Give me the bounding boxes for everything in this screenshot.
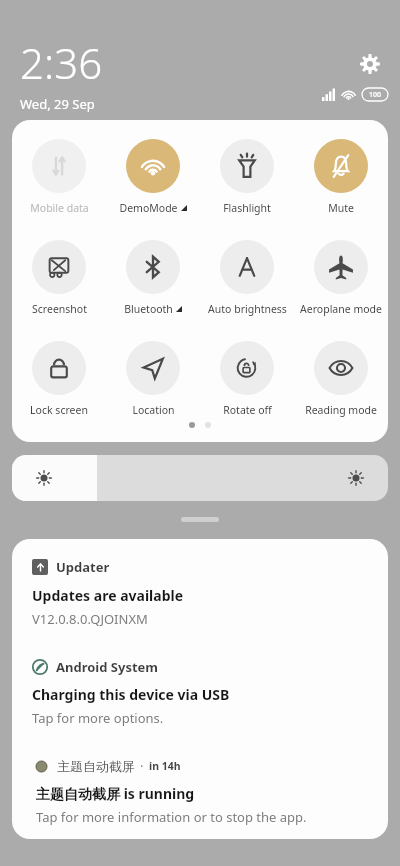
staticText: Rotate off [223,403,272,417]
staticText: Mobile data [30,201,89,215]
button[interactable]: Flashlight [200,137,294,217]
button[interactable]: Rotate off [200,339,294,419]
button[interactable]: Android System [12,658,388,735]
staticText: 100 [369,90,382,100]
staticText: Aeroplane mode [300,302,382,316]
button[interactable]: 主题自动截屏 [12,757,388,836]
button[interactable]: Mute [294,137,388,217]
button[interactable]: Brightness [12,455,388,501]
button[interactable]: Updater [12,539,388,636]
staticText: 主题自动截屏 [57,758,135,774]
staticText: Mute [328,201,354,215]
button[interactable]: Bluetooth [106,238,200,318]
staticText: 主题自动截屏 is running [36,784,195,803]
staticText: Auto brightness [208,302,287,316]
staticText: Lock screen [30,403,88,417]
button[interactable]: Lock screen [12,339,106,419]
staticText: · [140,757,144,775]
staticText: Screenshot [32,302,87,316]
button[interactable]: Location [106,339,200,419]
button[interactable]: Reading mode [294,339,388,419]
staticText: Wed, 29 Sep [20,95,95,113]
staticText: Tap for more information or to stop the … [36,808,307,826]
staticText: in 14h [149,759,181,773]
staticText: DemoMode [119,201,178,215]
button[interactable]: Aeroplane mode [294,238,388,318]
staticText: Flashlight [223,201,271,215]
staticText: Reading mode [305,403,377,417]
button[interactable]: Mobile data [12,137,106,217]
staticText: Charging this device via USB [32,685,230,704]
staticText: Android System [56,658,159,676]
button[interactable]: Settings [354,48,386,80]
staticText: Bluetooth [124,302,173,316]
staticText: V12.0.8.0.QJOINXM [32,610,148,628]
staticText: Updater [56,558,110,576]
staticText: Tap for more options. [32,709,164,727]
staticText: Location [132,403,175,417]
button[interactable]: DemoMode [106,137,200,217]
button[interactable]: Screenshot [12,238,106,318]
staticText: Updates are available [32,586,184,605]
staticText: 2:36 [20,34,103,91]
button[interactable]: Auto brightness [200,238,294,318]
